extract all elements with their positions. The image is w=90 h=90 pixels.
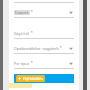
staticText: *	[60, 46, 62, 50]
staticText: *	[31, 61, 33, 65]
button[interactable]: Csoport	[14, 9, 74, 18]
button[interactable]: Fájl feltöltés	[16, 75, 45, 82]
staticText: *	[31, 10, 33, 14]
staticText: Súgó (m)	[14, 31, 30, 36]
staticText: Fájl feltöltés	[23, 76, 43, 81]
button[interactable]: Орнбиллblcбoт nagyiterb	[14, 45, 74, 54]
button[interactable]: Súgó (m)	[14, 30, 74, 39]
button[interactable]	[14, 84, 74, 89]
button[interactable]: Por típus	[14, 60, 74, 69]
staticText: *	[31, 31, 33, 35]
staticText: Csoport	[15, 10, 29, 15]
staticText: Por típus	[14, 61, 30, 66]
staticText: Орнбиллblcбoт nagyiterb	[14, 46, 59, 51]
